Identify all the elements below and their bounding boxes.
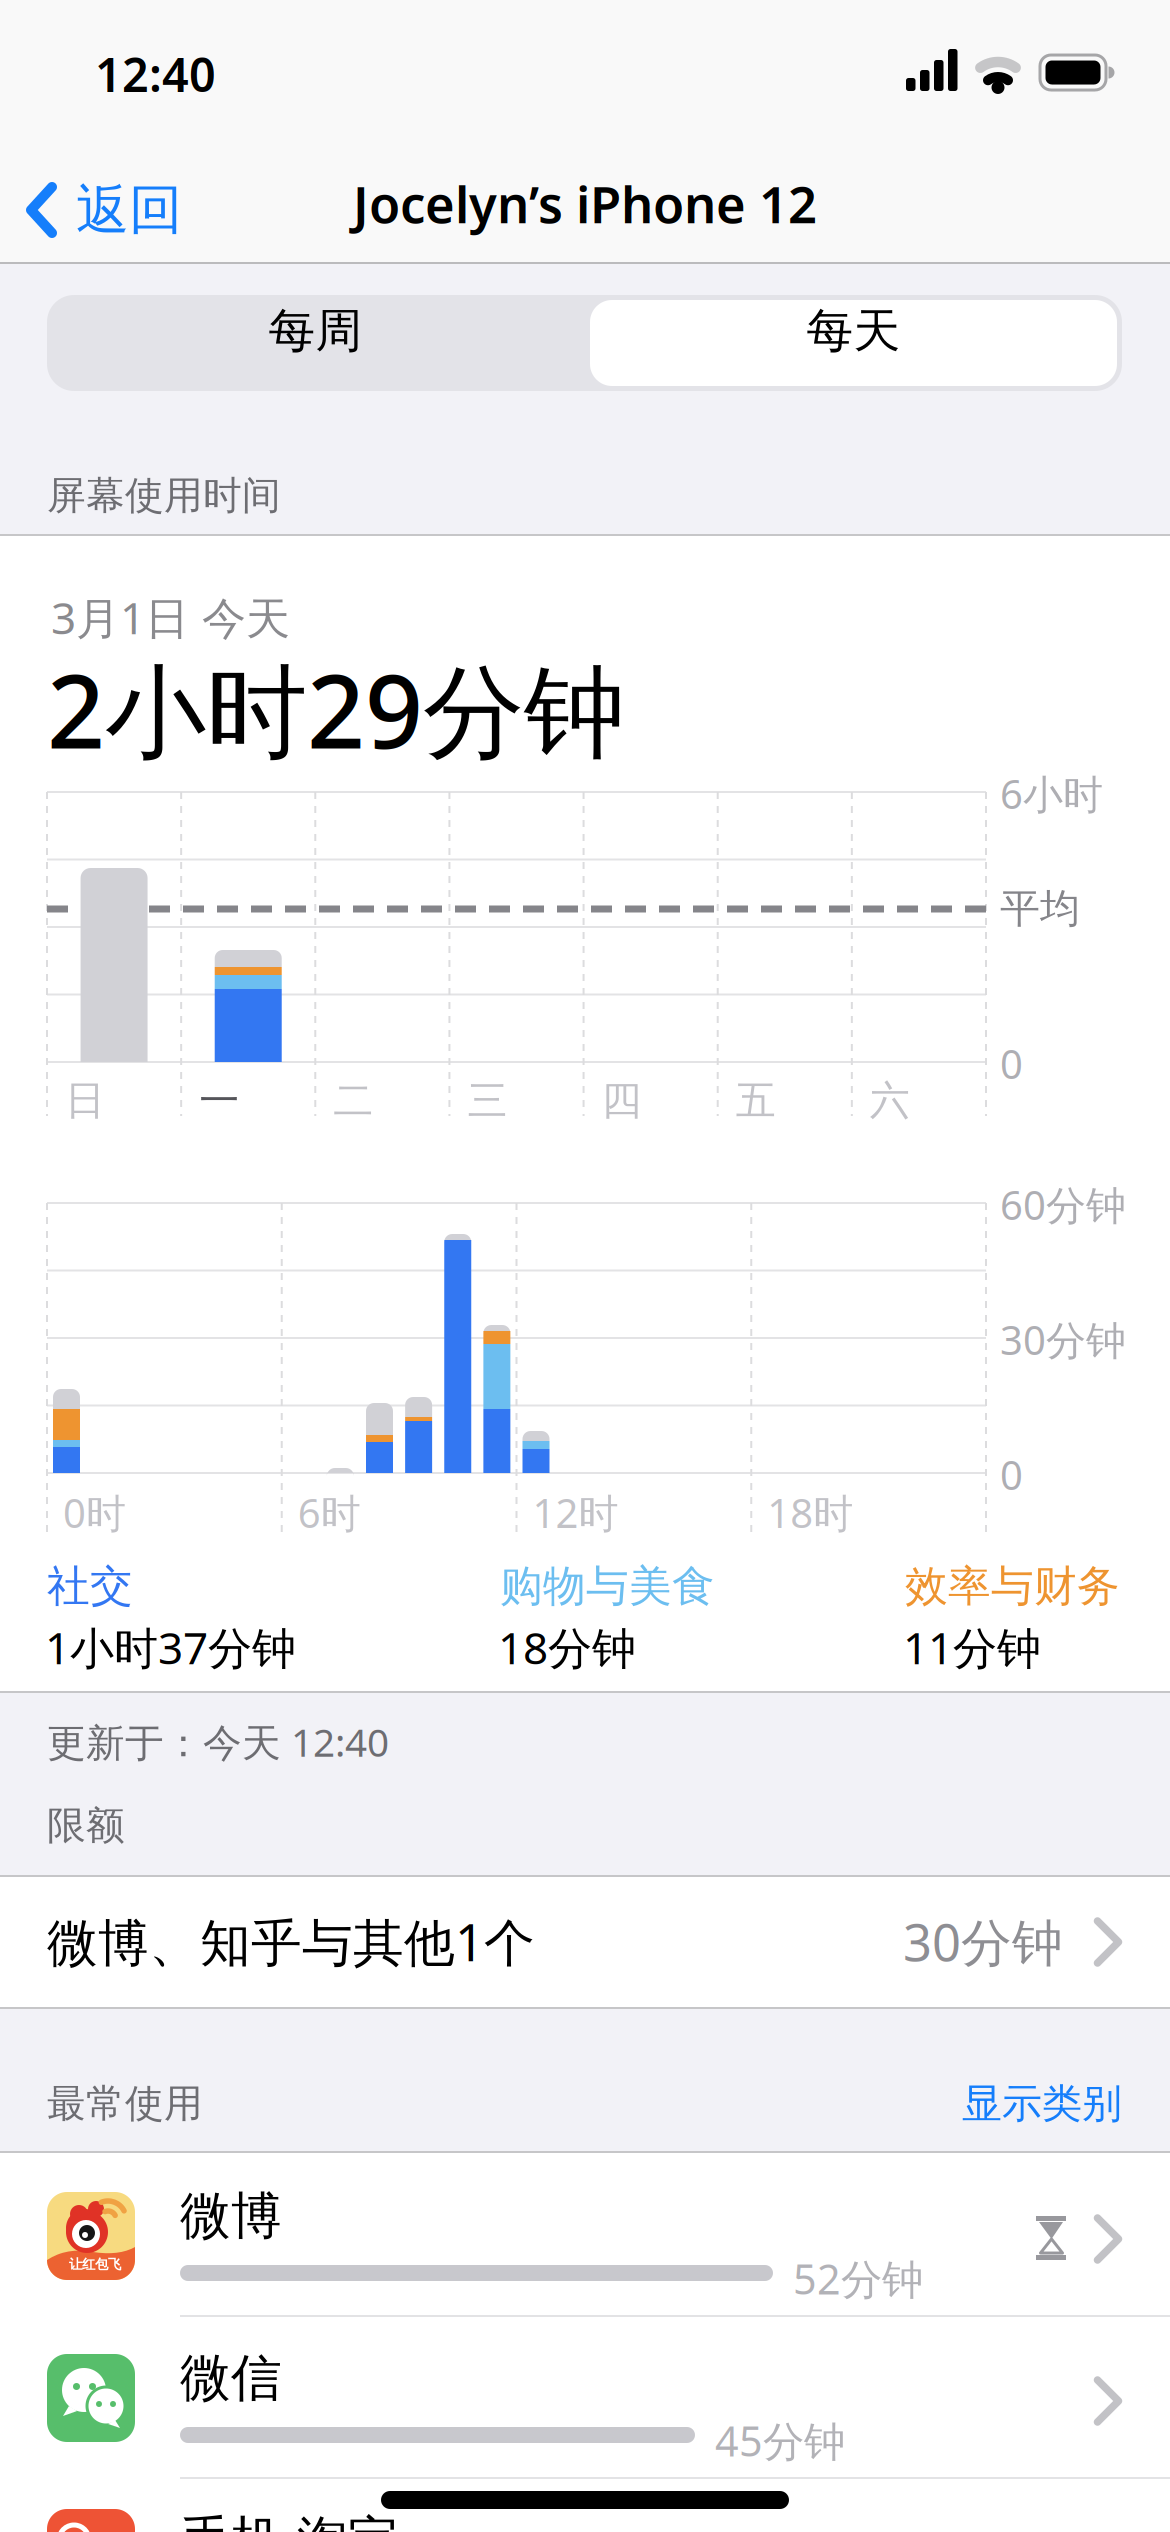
staticText: 限额: [47, 1802, 125, 1849]
staticText: 微博、知乎与其他1个: [47, 1908, 535, 1975]
button[interactable]: 让红包飞: [0, 2153, 1170, 2315]
staticText: 微博: [180, 2185, 282, 2247]
staticText: 12时: [532, 1486, 618, 1539]
button[interactable]: 显示类别: [722, 2079, 1122, 2128]
staticText: 每周: [268, 302, 362, 360]
staticText: 微信: [180, 2347, 282, 2409]
staticText: 效率与财务: [905, 1560, 1120, 1612]
staticText: 屏幕使用时间: [47, 472, 281, 519]
button[interactable]: 每周: [47, 295, 584, 391]
staticText: 社交: [47, 1560, 133, 1612]
staticText: 2小时29分钟: [47, 642, 625, 777]
staticText: 购物与美食: [500, 1560, 715, 1612]
button[interactable]: 微博、知乎与其他1个: [0, 1877, 1170, 2007]
staticText: 三: [467, 1076, 507, 1125]
staticText: 五: [736, 1076, 776, 1125]
button[interactable]: 每天: [585, 295, 1122, 391]
staticText: 平均: [1000, 884, 1080, 933]
staticText: 最常使用: [47, 2080, 203, 2127]
staticText: 1小时37分钟: [45, 1618, 296, 1676]
staticText: 6小时: [1000, 767, 1103, 820]
button[interactable]: Back: [28, 180, 182, 240]
staticText: 11分钟: [903, 1618, 1041, 1676]
staticText: 返回: [76, 177, 182, 243]
staticText: 日: [65, 1076, 105, 1125]
staticText: 18时: [767, 1486, 853, 1539]
staticText: 6时: [298, 1486, 361, 1539]
button[interactable]: 手机 淘宝: [0, 2477, 1170, 2532]
staticText: Jocelyn’s iPhone 12: [353, 170, 817, 237]
staticText: 0时: [63, 1486, 126, 1539]
staticText: 二: [333, 1076, 373, 1125]
staticText: 让红包飞: [69, 2256, 121, 2272]
button[interactable]: 微信: [0, 2315, 1170, 2477]
staticText: 45分钟: [715, 2413, 845, 2468]
staticText: 30分钟: [903, 1908, 1063, 1975]
staticText: 52分钟: [793, 2251, 923, 2306]
staticText: 18分钟: [498, 1618, 636, 1676]
staticText: 更新于：今天 12:40: [47, 1716, 389, 1767]
staticText: 0: [1000, 1037, 1023, 1090]
staticText: 显示类别: [962, 2079, 1122, 2128]
staticText: 30分钟: [1000, 1313, 1126, 1366]
staticText: 手机 淘宝: [180, 2509, 399, 2532]
staticText: 六: [870, 1076, 910, 1125]
staticText: 一: [199, 1076, 239, 1125]
staticText: 12:40: [95, 43, 216, 105]
staticText: 四: [602, 1076, 642, 1125]
staticText: 每天: [806, 302, 900, 360]
staticText: 0: [1000, 1448, 1023, 1501]
staticText: 60分钟: [1000, 1178, 1126, 1231]
staticText: 3月1日 今天: [51, 588, 290, 646]
